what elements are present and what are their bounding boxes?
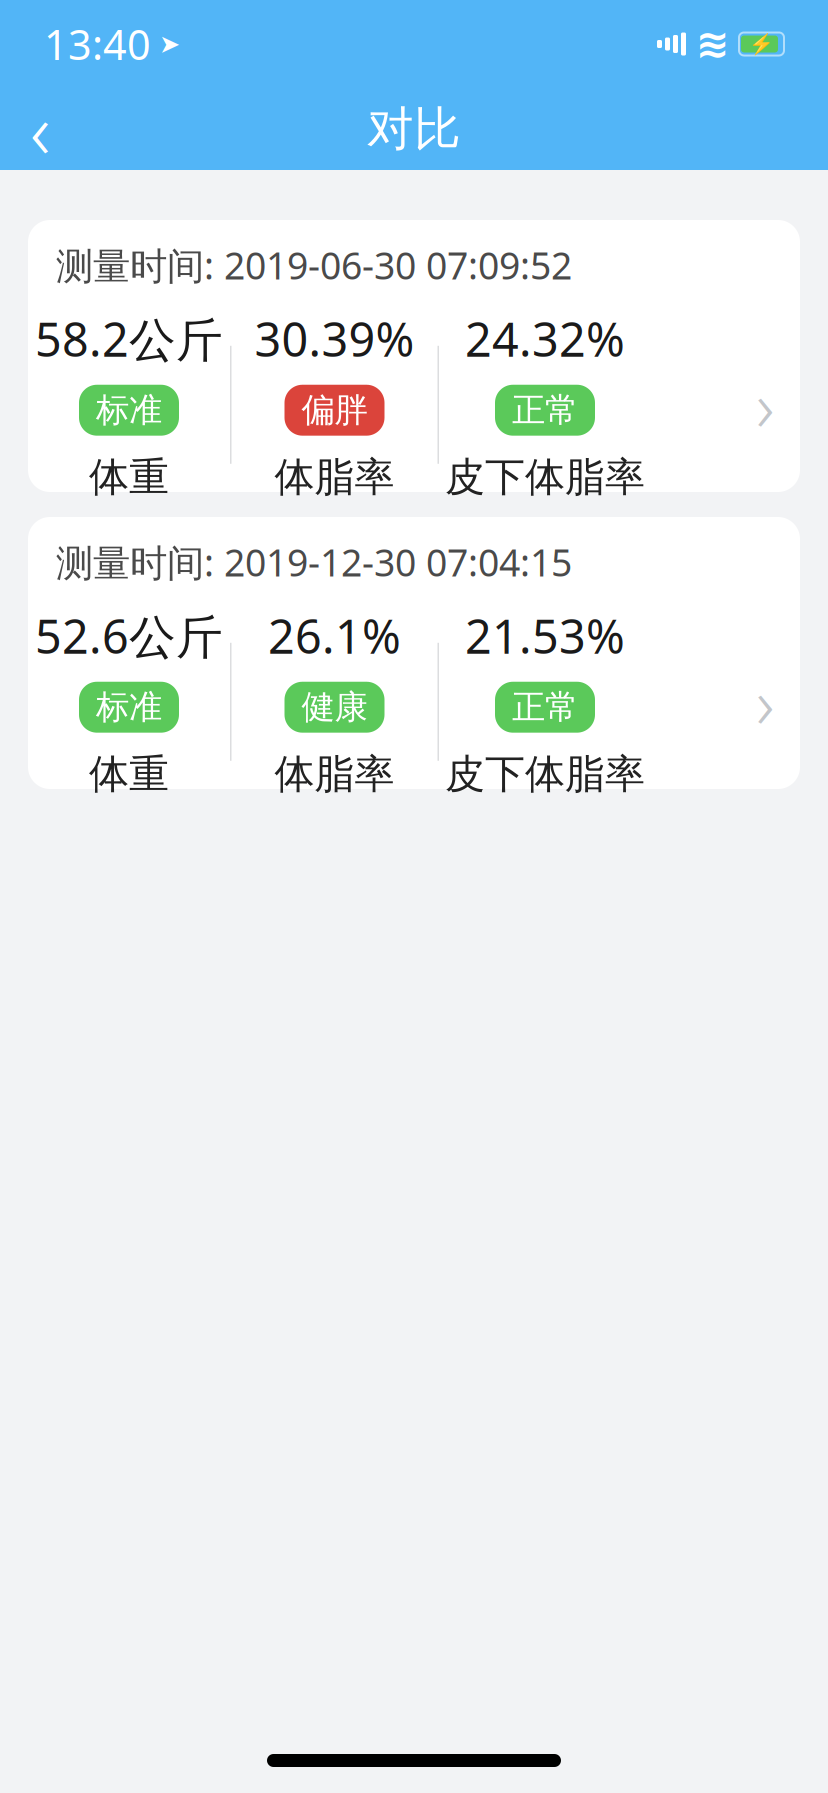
staticText: 标准 [96, 687, 162, 728]
staticText: ➤ [151, 30, 180, 58]
staticText: 13:40 [44, 17, 151, 71]
staticText: 皮下体脂率 [445, 453, 645, 502]
button[interactable]: 测量时间: 2019-12-30 07:04:15 [28, 517, 800, 789]
staticText: 标准 [96, 390, 162, 431]
staticText: 正常 [512, 390, 578, 431]
staticText: 体脂率 [274, 453, 394, 502]
staticText: 正常 [512, 687, 578, 728]
staticText: 58.2公斤 [35, 308, 223, 370]
staticText: 对比 [367, 100, 461, 158]
staticText: › [756, 359, 774, 451]
staticText: ≋ [696, 21, 730, 67]
staticText: 健康 [301, 687, 367, 728]
staticText: 偏胖 [301, 390, 367, 431]
staticText: 皮下体脂率 [445, 750, 645, 799]
staticText: 24.32% [465, 308, 625, 370]
staticText: 52.6公斤 [35, 605, 223, 667]
staticText: 体重 [89, 750, 169, 799]
staticText: ‹ [30, 78, 50, 180]
button[interactable]: Back [0, 88, 80, 170]
staticText: 21.53% [465, 605, 625, 667]
staticText: ⚡ [749, 33, 774, 55]
staticText: 体脂率 [274, 750, 394, 799]
staticText: 26.1% [268, 605, 401, 667]
staticText: 30.39% [254, 308, 414, 370]
staticText: › [756, 656, 774, 748]
button[interactable]: 测量时间: 2019-06-30 07:09:52 [28, 220, 800, 492]
staticText: 测量时间: 2019-12-30 07:04:15 [56, 537, 572, 587]
staticText: 测量时间: 2019-06-30 07:09:52 [56, 240, 572, 290]
staticText: 体重 [89, 453, 169, 502]
